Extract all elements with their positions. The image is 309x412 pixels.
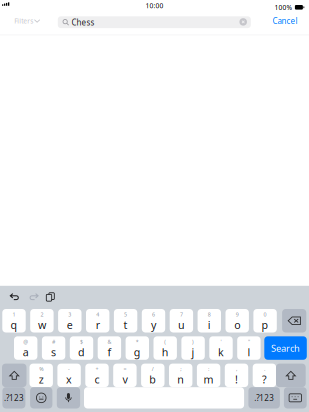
staticText: ; [180,365,181,373]
staticText: 1 [12,311,15,318]
staticText: Chess [71,17,94,28]
staticText: = [123,365,126,373]
staticText: & [107,338,111,345]
button[interactable]: Undo [9,293,20,301]
button[interactable]: Delete [282,309,306,332]
staticText: 10:00 [145,1,163,10]
button[interactable]: Filters [14,11,54,31]
button[interactable]: Numbers and symbols [248,387,280,408]
button[interactable]: 4 [86,309,109,332]
staticText: e [67,318,73,332]
button[interactable]: 2 [30,309,54,332]
staticText: Cancel [272,16,297,26]
staticText: v [122,372,127,386]
staticText: s [51,345,56,359]
staticText: . [264,365,265,373]
button[interactable]: 0 [253,309,277,332]
staticText: 9 [236,311,239,318]
button[interactable]: Shift [276,364,306,387]
staticText: ) [192,338,194,345]
staticText: r [96,318,100,332]
button[interactable]: & [98,336,121,360]
staticText: Search [271,342,300,354]
staticText: 3 [68,311,71,318]
staticText: ? [262,372,267,386]
button[interactable]: , [225,364,248,387]
button[interactable]: Clear search [237,16,249,28]
staticText: q [10,318,17,332]
staticText: j [192,345,195,359]
staticText: 0 [264,311,267,318]
staticText: f [107,345,111,359]
button[interactable]: % [29,364,53,387]
staticText: b [149,372,156,386]
button[interactable]: ( [153,336,177,360]
button[interactable]: 1 [2,309,26,332]
staticText: t [124,318,128,332]
staticText: $ [80,338,83,345]
staticText: 2 [40,311,43,318]
staticText: m [204,372,214,386]
button[interactable]: # [42,336,65,360]
staticText: 100% [274,3,292,12]
button[interactable]: : [197,364,220,387]
staticText: n [177,372,184,386]
button[interactable]: = [113,364,137,387]
button[interactable]: 3 [58,309,81,332]
staticText: g [134,345,141,359]
button[interactable]: - [57,364,81,387]
staticText: " [248,338,250,345]
staticText: 4 [96,311,99,318]
staticText: z [39,372,44,386]
button[interactable]: Cancel [270,11,300,31]
button[interactable]: 9 [225,309,249,332]
button[interactable]: Numbers and symbols [2,387,25,408]
button[interactable]: Paste [46,293,54,301]
button[interactable]: @ [14,336,37,360]
staticText: , [236,365,237,373]
staticText: : [208,365,209,373]
button[interactable]: " [237,336,261,360]
staticText: 6 [152,311,155,318]
staticText: 5 [124,311,127,318]
button[interactable]: 8 [198,309,221,332]
button[interactable]: / [141,364,164,387]
staticText: l [247,345,250,359]
staticText: c [94,372,99,386]
staticText: 7 [180,311,183,318]
staticText: + [95,365,98,373]
staticText: Filters [14,17,33,25]
staticText: u [178,318,185,332]
button[interactable]: + [85,364,109,387]
button[interactable]: . [253,364,276,387]
button[interactable]: ) [181,336,205,360]
staticText: .?123 [4,392,24,403]
button[interactable]: Hide keyboard [284,387,307,408]
staticText: y [151,318,156,332]
button[interactable]: ' [209,336,233,360]
staticText: h [162,345,169,359]
staticText: w [38,318,46,332]
staticText: @ [23,338,28,345]
button[interactable]: Emoji [30,387,52,408]
button[interactable]: 7 [170,309,193,332]
button[interactable]: 5 [114,309,137,332]
button[interactable]: * [126,336,149,360]
button[interactable]: 6 [142,309,165,332]
button[interactable]: $ [70,336,93,360]
button[interactable]: Search [264,336,307,360]
staticText: .?123 [254,392,274,403]
button[interactable]: Redo [28,293,39,301]
button[interactable]: Dictate [57,387,80,408]
staticText: x [66,372,72,386]
button[interactable]: Shift [2,364,26,387]
button[interactable]: ; [169,364,192,387]
staticText: # [52,338,55,345]
staticText: i [208,318,211,332]
staticText: a [23,345,29,359]
staticText: ' [220,338,221,345]
staticText: / [152,365,154,373]
staticText: p [262,318,269,332]
staticText: - [68,365,70,373]
